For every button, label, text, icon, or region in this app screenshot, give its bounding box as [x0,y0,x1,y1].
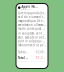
staticText: $1,284.00 [36,56,46,60]
staticText: Lorem ipsum dolor sit amet, consectetur … [18,11,46,15]
staticText: laborum sed ut perspiciatis. [18,43,46,47]
staticText: magna aliqua. Ut enim ad minim veniam, q… [18,19,46,23]
staticText: Subtotal [18,50,28,54]
staticText: Apple Newsroom [21,5,37,8]
staticText: sunt in culpa qui officia deserunt molli… [18,39,46,43]
staticText: modo consequat. Duis aute irure dolor in… [18,27,46,30]
staticText: in voluptate velit esse cillum dolore eu… [18,32,46,35]
staticText: to me 9:41 AM [21,9,29,10]
staticText: atur. Excepteur sint occaecat cupidatat … [18,36,46,39]
staticText: $248.00 [36,50,46,54]
staticText: sed do eiusmod tempor incididunt ut labo… [18,15,46,19]
staticText: exercitation ullamco laboris nisi ut ali… [18,23,46,27]
staticText: Total due [18,56,28,60]
